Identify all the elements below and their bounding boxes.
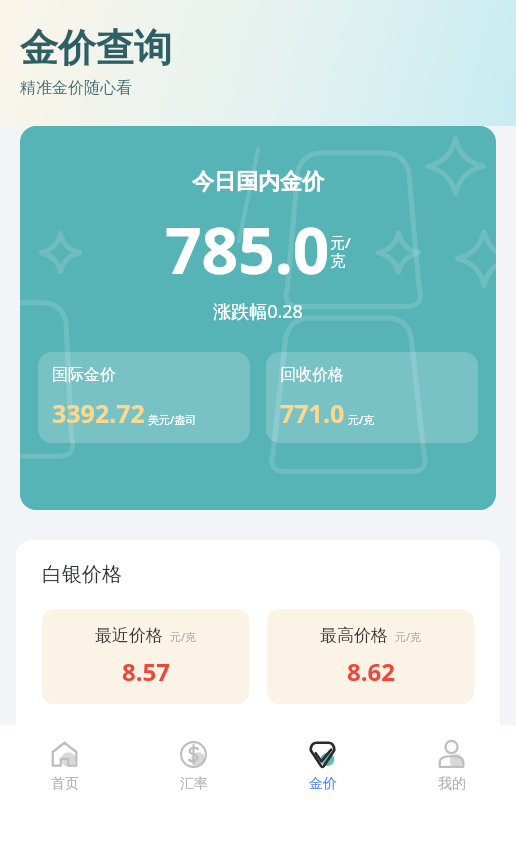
button[interactable]: 白银价格 [16,540,500,740]
button[interactable]: 汇率 [129,725,258,793]
button[interactable]: 最近价格 [42,609,249,704]
staticText: 8.62 [347,655,395,688]
staticText: 元/克 [170,629,197,644]
button[interactable]: 首页 [0,725,129,793]
staticText: 3392.72 [52,396,145,430]
staticText: 771.0 [280,396,345,430]
staticText: 首页 [51,775,79,793]
staticText: 美元/盎司 [148,412,197,427]
staticText: 金价 [309,775,337,793]
staticText: 克 [330,252,345,271]
staticText: 元/ [330,232,351,252]
button[interactable]: 我的 [387,725,516,793]
staticText: 汇率 [180,775,208,793]
button[interactable]: 金价 [258,725,387,793]
staticText: 最近价格 [95,625,163,646]
button[interactable]: 国际金价 [38,352,250,443]
staticText: 元/克 [348,412,375,427]
staticText: 我的 [438,775,466,793]
staticText: 白银价格 [42,562,122,587]
staticText: 回收价格 [280,365,344,385]
staticText: 涨跌幅0.28 [20,299,496,324]
staticText: 精准金价随心看 [20,78,132,98]
staticText: 最高价格 [320,625,388,646]
staticText: 国际金价 [52,365,116,385]
staticText: 元/克 [395,629,422,644]
button[interactable]: 今日国内金价 [20,126,496,510]
staticText: 金价查询 [20,24,172,72]
staticText: 今日国内金价 [20,168,496,196]
button[interactable]: 回收价格 [266,352,478,443]
staticText: 785.0 [165,206,330,293]
button[interactable]: 最高价格 [267,609,474,704]
staticText: 8.57 [122,655,170,688]
